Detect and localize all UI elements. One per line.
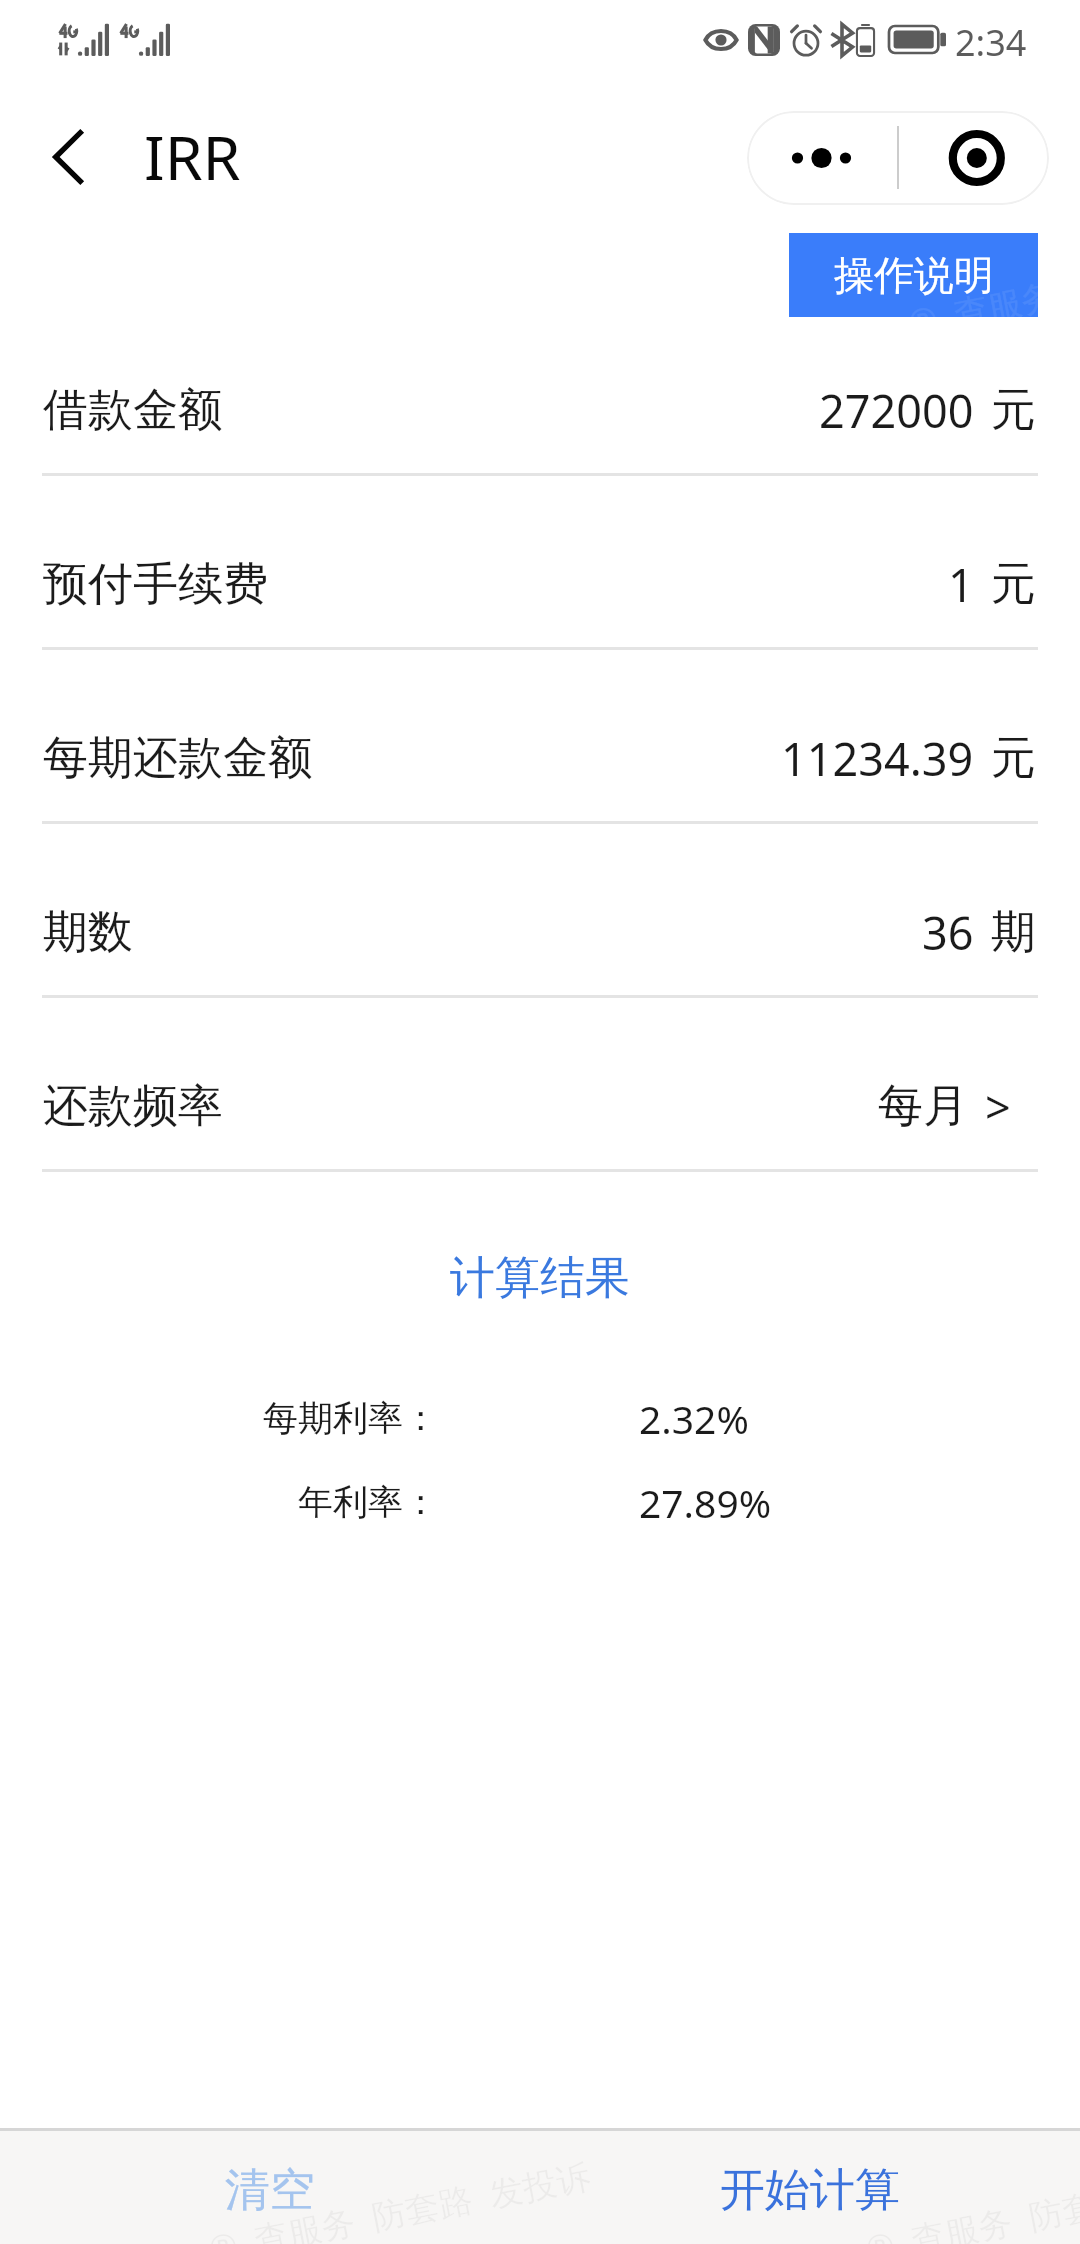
button[interactable]: 操作说明 [789,233,1038,317]
staticText: 还款频率 [43,1078,223,1135]
staticText: 11234.39 [781,728,974,789]
staticText: 期数 [43,904,133,961]
staticText: 元 [991,730,1036,787]
button[interactable]: 开始计算 [540,2131,1080,2244]
staticText: 每期利率： [263,1396,438,1440]
button[interactable]: 借款金额 [0,323,1080,497]
staticText: 2.32% [639,1392,749,1445]
staticText: 元 [991,556,1036,613]
staticText: > [985,1076,1011,1137]
staticText: 借款金额 [43,382,223,439]
button[interactable]: 预付手续费 [0,497,1080,671]
staticText: 27.89% [639,1476,772,1529]
staticText: 每期还款金额 [43,730,313,787]
staticText: 36 [922,902,974,963]
staticText: 操作说明 [834,250,994,300]
button[interactable]: 期数 [0,845,1080,1019]
staticText: ® 查服务 防套路 发投诉 [862,2152,1080,2244]
staticText: 年利率： [298,1480,438,1524]
staticText: 每月 [878,1078,968,1135]
staticText: ® 查服务 防套路 发投诉 [905,226,1080,345]
staticText: ® 查服务 防套路 发投诉 [205,2152,595,2244]
staticText: 1 [948,554,974,615]
staticText: IRR [144,115,241,198]
staticText: 期 [991,904,1036,961]
button[interactable]: More options [747,111,897,205]
button[interactable]: 还款频率 [0,1019,1080,1193]
staticText: 计算结果 [450,1250,630,1300]
button[interactable]: Back [22,110,114,204]
button[interactable]: 每期还款金额 [0,671,1080,845]
staticText: 272000 [819,380,974,441]
staticText: 清空 [225,2162,315,2219]
staticText: 2:34 [955,18,1027,67]
staticText: 开始计算 [720,2162,900,2219]
button[interactable]: Close mini program [899,111,1049,205]
staticText: 预付手续费 [43,556,268,613]
staticText: 元 [991,382,1036,439]
button[interactable]: 清空 [0,2131,540,2244]
